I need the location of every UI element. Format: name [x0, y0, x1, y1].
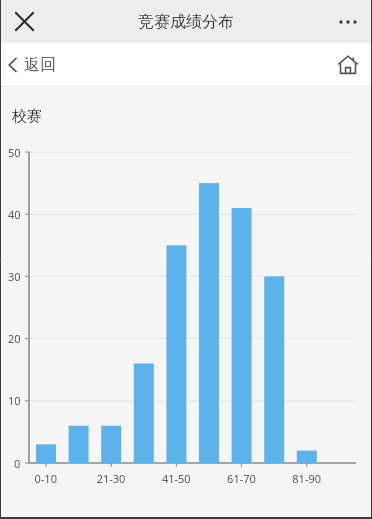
staticText: 返回 [24, 55, 56, 75]
staticText: 校赛 [12, 107, 42, 126]
staticText: 竞赛成绩分布 [138, 12, 234, 32]
button[interactable]: Close [0, 0, 48, 43]
button[interactable]: More options [324, 0, 372, 43]
button[interactable]: Home [324, 43, 372, 86]
button[interactable]: 返回 [8, 43, 56, 86]
